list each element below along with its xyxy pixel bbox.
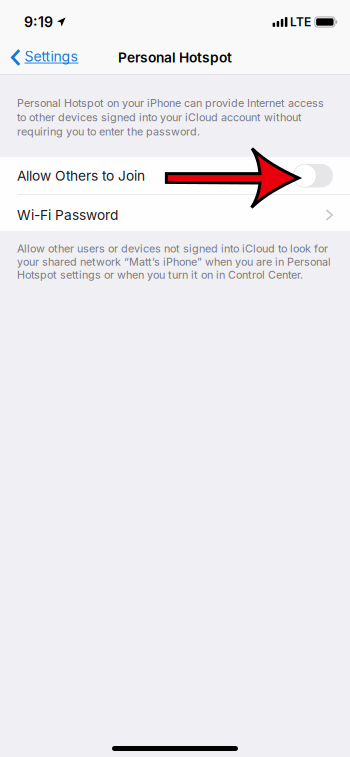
staticText: Allow other users or devices not signed … [17, 242, 331, 281]
staticText: Wi-Fi Password [17, 207, 118, 223]
staticText: Personal Hotspot on your iPhone can prov… [17, 96, 324, 138]
button[interactable]: Wi-Fi Password [0, 195, 350, 231]
staticText: Personal Hotspot [118, 49, 232, 66]
button[interactable]: Allow Others to Join [0, 157, 350, 194]
staticText: Allow Others to Join [17, 167, 145, 184]
staticText: Settings [24, 48, 77, 65]
button[interactable]: Settings [0, 43, 78, 72]
staticText: LTE [290, 15, 311, 29]
staticText: 9:19 [24, 13, 53, 30]
